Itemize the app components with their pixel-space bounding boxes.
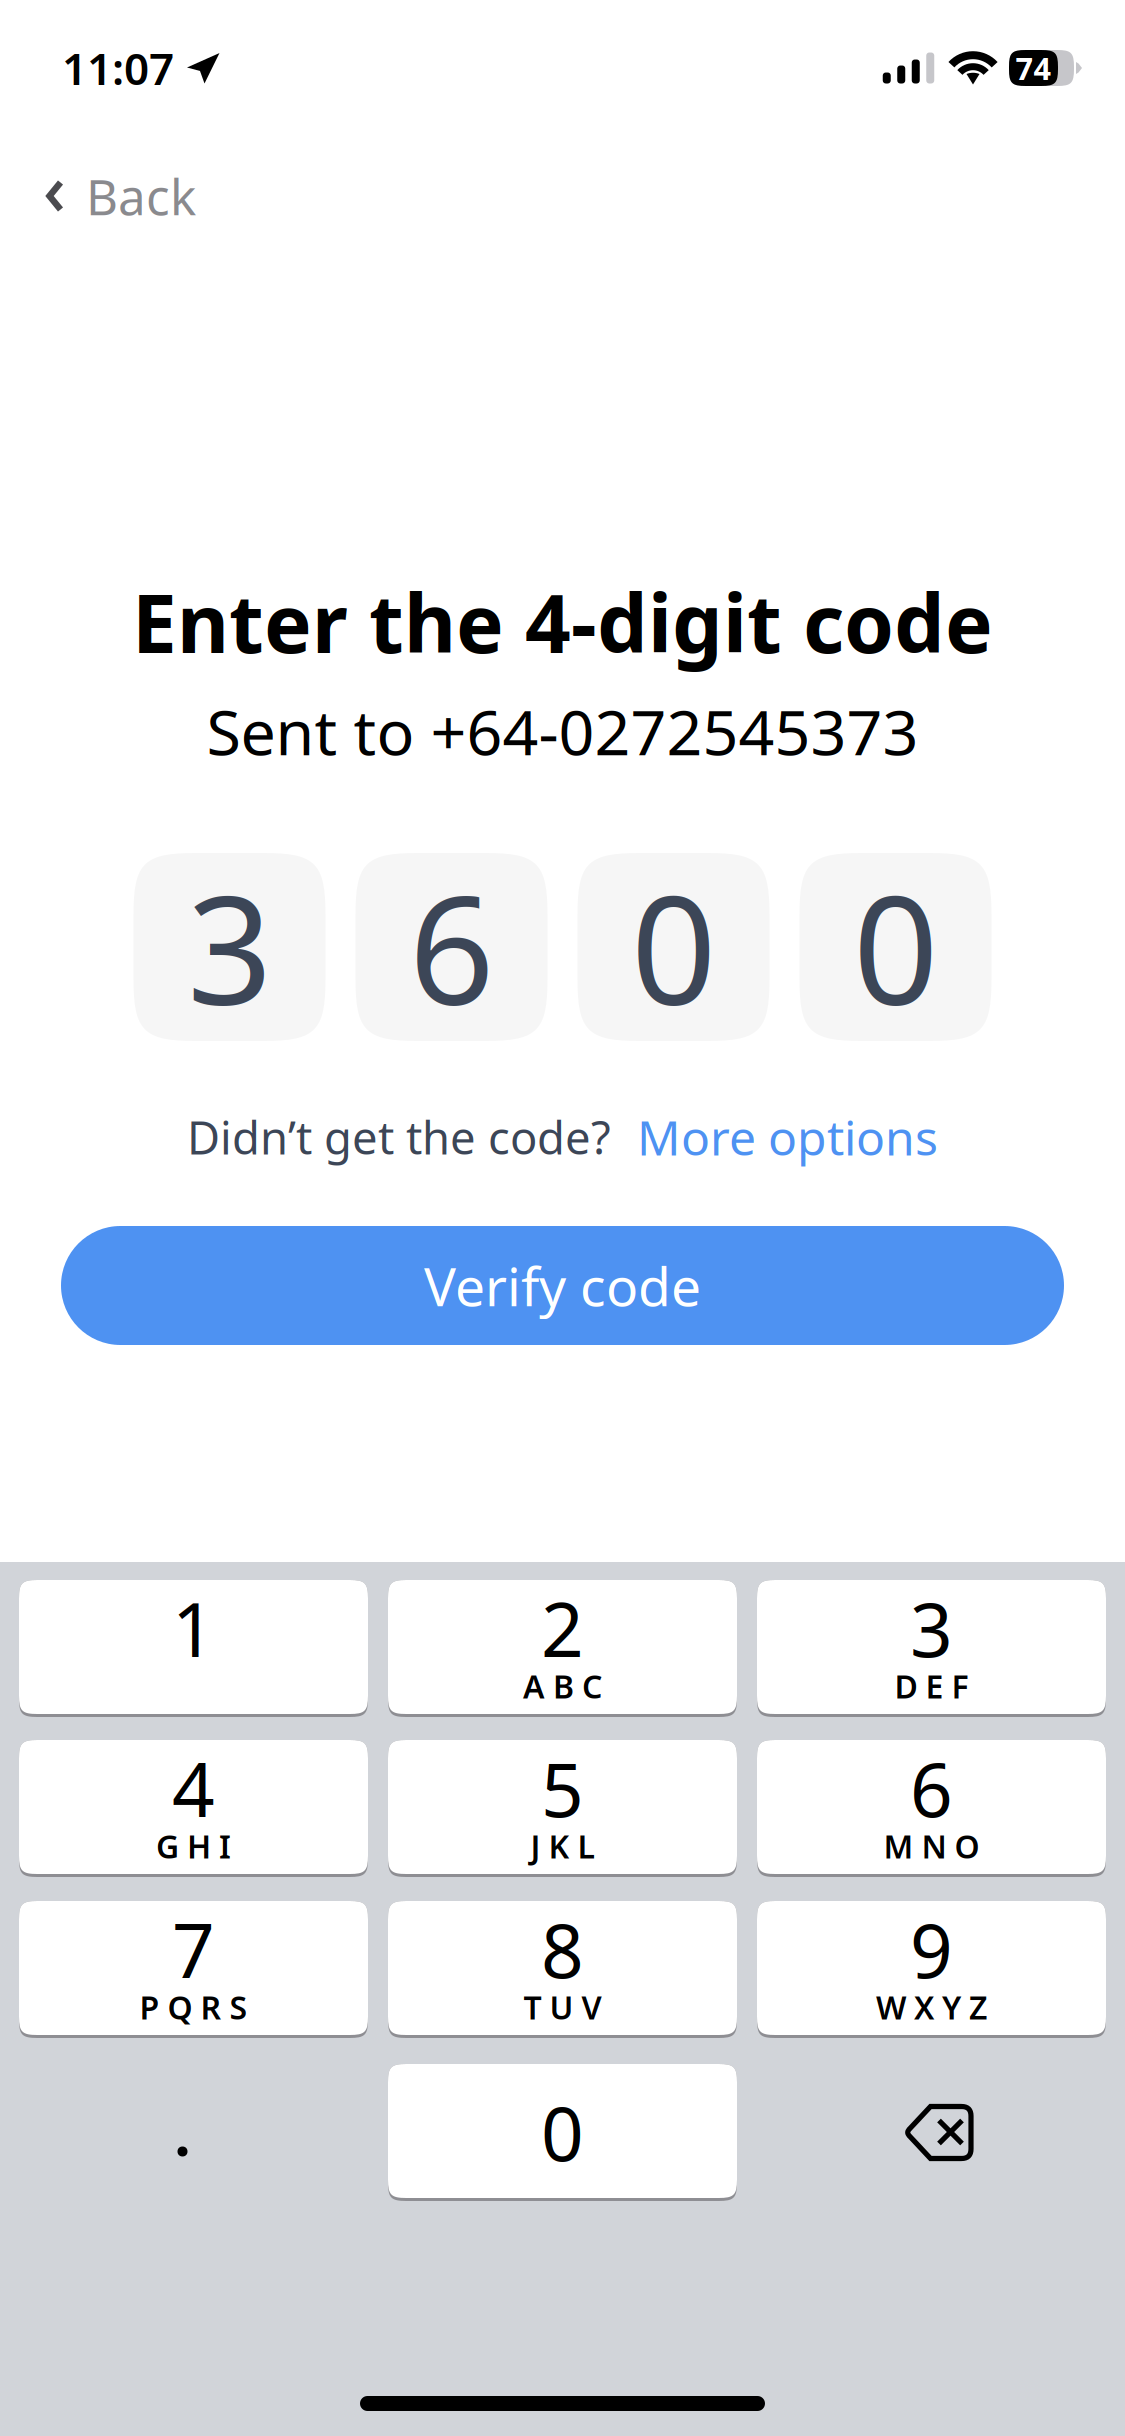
button[interactable]: More options: [637, 1105, 938, 1169]
staticText: 2: [541, 1578, 584, 1678]
button[interactable]: Period: [19, 2064, 368, 2201]
staticText: P Q R S: [139, 1986, 247, 2028]
button[interactable]: 9: [757, 1901, 1106, 2038]
staticText: More options: [637, 1105, 938, 1169]
button[interactable]: Verify code: [61, 1226, 1064, 1345]
staticText: Enter the 4-digit code: [132, 569, 993, 675]
staticText: Didn’t get the code?: [187, 1107, 611, 1167]
staticText: 0: [631, 848, 716, 1046]
staticText: T U V: [523, 1986, 601, 2028]
staticText: 4: [172, 1738, 215, 1838]
staticText: A B C: [523, 1665, 602, 1707]
staticText: 0: [853, 848, 938, 1046]
staticText: 1: [172, 1578, 215, 1678]
staticText: W X Y Z: [876, 1986, 987, 2028]
staticText: 11:07: [62, 39, 174, 97]
button[interactable]: 8: [388, 1901, 737, 2038]
staticText: 6: [409, 848, 494, 1046]
button[interactable]: Verification code, 3 6 0 0: [133, 853, 991, 1041]
staticText: 3: [910, 1578, 953, 1678]
staticText: G H I: [156, 1825, 231, 1867]
staticText: J K L: [530, 1825, 594, 1867]
staticText: 3: [187, 848, 272, 1046]
staticText: 7: [172, 1899, 215, 1999]
button[interactable]: Delete: [757, 2064, 1106, 2201]
staticText: M N O: [883, 1825, 979, 1867]
button[interactable]: Back: [0, 132, 230, 242]
button[interactable]: 0: [388, 2064, 737, 2201]
button[interactable]: 1: [19, 1580, 368, 1717]
staticText: 0: [541, 2082, 584, 2182]
staticText: 74: [1015, 48, 1051, 88]
staticText: Verify code: [424, 1250, 701, 1321]
staticText: 9: [910, 1899, 953, 1999]
button[interactable]: 7: [19, 1901, 368, 2038]
staticText: 8: [541, 1899, 584, 1999]
button[interactable]: 3: [757, 1580, 1106, 1717]
staticText: 6: [910, 1738, 953, 1838]
staticText: 5: [541, 1738, 584, 1838]
staticText: D E F: [894, 1665, 968, 1707]
staticText: Back: [86, 163, 196, 229]
button[interactable]: 4: [19, 1740, 368, 1877]
staticText: Sent to +64-0272545373: [206, 689, 918, 773]
button[interactable]: 6: [757, 1740, 1106, 1877]
button[interactable]: 2: [388, 1580, 737, 1717]
button[interactable]: 5: [388, 1740, 737, 1877]
